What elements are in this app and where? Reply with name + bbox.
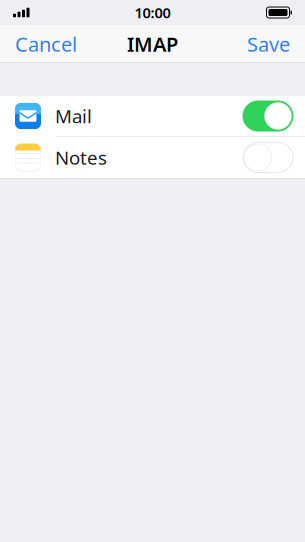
button[interactable]: Save: [243, 23, 294, 65]
button[interactable]: Mail: [0, 95, 305, 136]
staticText: 10:00: [134, 3, 170, 22]
staticText: Save: [247, 31, 290, 57]
button[interactable]: Notes: [0, 137, 305, 178]
staticText: Notes: [55, 145, 107, 170]
staticText: Cancel: [15, 31, 77, 57]
staticText: IMAP: [127, 31, 178, 57]
staticText: Mail: [55, 104, 92, 128]
button[interactable]: Cancel: [11, 23, 81, 65]
